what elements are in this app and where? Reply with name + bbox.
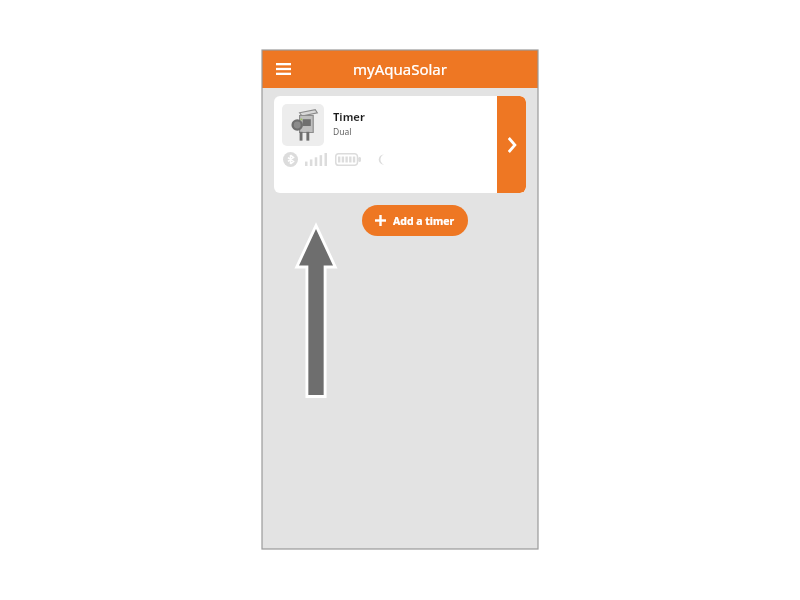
staticText: Add a timer <box>393 214 455 228</box>
button[interactable]: Open timer details <box>497 96 526 193</box>
button[interactable]: Menu <box>270 56 296 82</box>
staticText: Timer <box>333 109 365 124</box>
button[interactable]: Timer <box>274 96 526 193</box>
button[interactable]: Add a timer <box>362 205 468 236</box>
staticText: myAquaSolar <box>353 59 447 79</box>
staticText: Dual <box>333 126 352 138</box>
